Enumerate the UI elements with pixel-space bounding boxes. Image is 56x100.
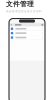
button[interactable]: File row — [9, 35, 45, 40]
button[interactable]: File row — [9, 26, 45, 31]
staticText: 文件管理 — [6, 0, 34, 8]
button[interactable]: File row — [9, 31, 45, 35]
staticText: 高效整理您的全部文件资料 — [6, 10, 42, 13]
